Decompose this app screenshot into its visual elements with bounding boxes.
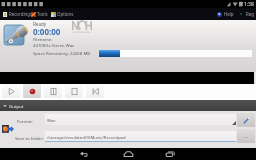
button[interactable]: Recent apps: [160, 148, 180, 160]
staticText: Output: [9, 103, 24, 109]
staticText: 44100Hz Stereo Wav: [33, 42, 75, 48]
button[interactable]: Back: [74, 148, 94, 160]
button[interactable]: Play: [2, 84, 20, 98]
button[interactable]: Record: [23, 84, 41, 98]
staticText: ...: [244, 133, 249, 140]
staticText: Space Remaining: 24268 MB: [33, 50, 91, 56]
staticText: Reg: [246, 11, 254, 17]
button[interactable]: Home: [118, 148, 138, 160]
staticText: Ready: [33, 21, 47, 27]
staticText: Format:: [17, 118, 33, 124]
button[interactable]: Reg: [240, 8, 254, 20]
staticText: /storage/emulated/0/Music/Recordpad: [47, 134, 126, 140]
staticText: Help: [224, 11, 234, 17]
staticText: Tools: [37, 11, 48, 17]
staticText: 0:00:00: [33, 26, 61, 37]
staticText: Filename:: [33, 36, 53, 42]
button[interactable]: Stop: [65, 84, 83, 98]
button[interactable]: Recordings: [3, 8, 33, 20]
staticText: Save to folder:: [15, 135, 44, 141]
staticText: Wav: [47, 117, 56, 123]
button[interactable]: /storage/emulated/0/Music/Recordpad: [45, 131, 236, 142]
staticText: 11:38: [241, 1, 254, 8]
button[interactable]: Browse folder: [237, 129, 255, 143]
button[interactable]: Pause: [44, 84, 62, 98]
button[interactable]: Help: [217, 8, 234, 20]
button[interactable]: Edit format: [237, 113, 255, 127]
staticText: Recordings: [9, 11, 33, 17]
button[interactable]: Wav: [45, 114, 236, 125]
staticText: Options: [57, 11, 74, 17]
button[interactable]: Options: [51, 8, 74, 20]
button[interactable]: Output: [0, 100, 256, 111]
button[interactable]: Skip to start: [86, 84, 104, 98]
button[interactable]: Tools: [31, 8, 48, 20]
